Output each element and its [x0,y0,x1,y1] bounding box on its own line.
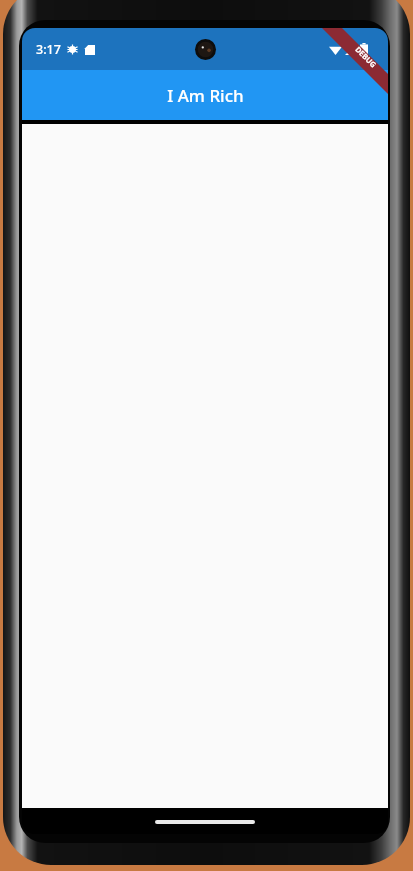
staticText: 3:17 [36,41,61,58]
button[interactable]: I Am Rich [22,70,388,120]
staticText: DEBUG [353,44,379,70]
button[interactable]: Home [155,820,255,824]
staticText: I Am Rich [167,84,244,107]
